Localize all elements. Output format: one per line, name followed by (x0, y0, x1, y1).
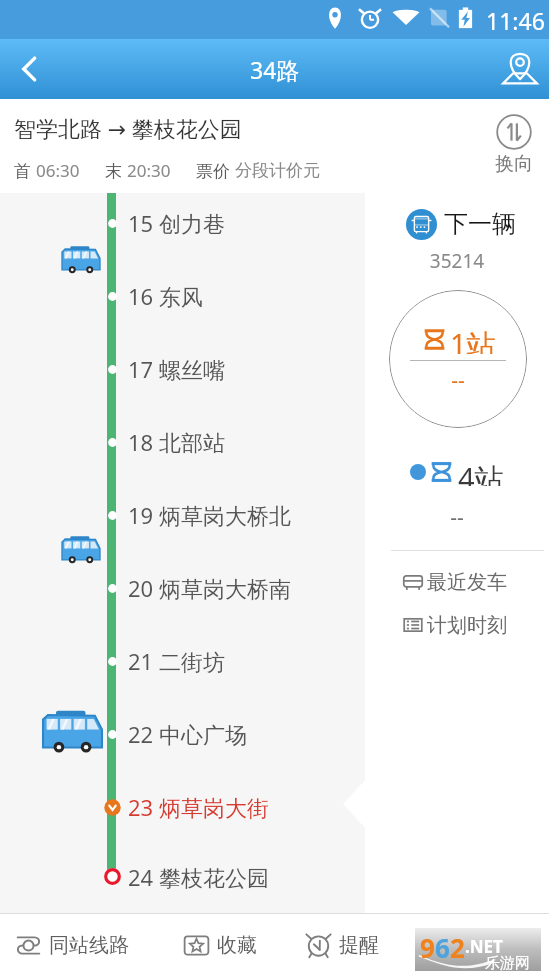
button[interactable]: 17 螺丝嘴 (0, 369, 365, 442)
staticText: 票价 (196, 159, 235, 182)
button[interactable]: 23 炳草岗大街 (0, 807, 365, 880)
staticText: 收藏 (217, 933, 257, 958)
button[interactable]: 20 炳草岗大桥南 (0, 588, 365, 661)
staticText: 19 炳草岗大桥北 (128, 500, 291, 530)
staticText: 首 (14, 159, 36, 182)
staticText: 分段计价元 (235, 160, 320, 181)
staticText: 06:30 (36, 159, 80, 182)
staticText: 智学北路 → 攀枝花公园 (14, 113, 242, 143)
button[interactable]: 16 东风 (0, 296, 365, 369)
staticText: 提醒 (339, 933, 379, 958)
button[interactable]: 下一辆 (373, 208, 549, 240)
button[interactable]: 19 炳草岗大桥北 (0, 515, 365, 588)
staticText: 11:46 (486, 5, 545, 36)
staticText: 2 (450, 930, 465, 965)
staticText: -- (389, 366, 527, 395)
staticText: 4站 (458, 458, 504, 486)
button[interactable]: 15 创力巷 (0, 223, 365, 296)
button[interactable]: 1站 (389, 290, 527, 428)
staticText: 最近发车 (427, 570, 507, 594)
button[interactable]: 24 攀枝花公园 (0, 880, 365, 913)
button[interactable]: 换向 (495, 114, 533, 176)
button[interactable]: 最近发车 (402, 570, 549, 594)
staticText: 17 螺丝嘴 (128, 354, 225, 384)
staticText: 23 炳草岗大街 (128, 792, 269, 822)
button[interactable]: 21 二街坊 (0, 661, 365, 734)
staticText: 9 (420, 930, 435, 965)
staticText: 34路 (250, 54, 300, 85)
button[interactable]: 计划时刻 (402, 613, 549, 637)
staticText: 乐游网 (485, 954, 530, 973)
button[interactable]: 同站线路 (0, 914, 168, 976)
staticText: 24 攀枝花公园 (128, 862, 269, 892)
button[interactable]: 4站 (365, 458, 549, 486)
button[interactable]: 18 北部站 (0, 442, 365, 515)
staticText: 计划时刻 (427, 613, 507, 637)
button[interactable]: Map (491, 39, 549, 99)
staticText: 35214 (365, 248, 549, 274)
staticText: 末 (105, 159, 127, 182)
staticText: 21 二街坊 (128, 646, 225, 676)
staticText: -- (365, 503, 549, 532)
staticText: .NET (465, 935, 503, 958)
staticText: 18 北部站 (128, 427, 225, 457)
staticText: 22 中心广场 (128, 719, 247, 749)
button[interactable]: 提醒 (305, 914, 415, 976)
staticText: 15 创力巷 (128, 208, 225, 238)
staticText: 下一辆 (444, 209, 516, 239)
staticText: 1站 (450, 324, 496, 354)
staticText: 20 炳草岗大桥南 (128, 573, 291, 603)
staticText: 6 (435, 930, 450, 965)
staticText: 20:30 (127, 159, 171, 182)
staticText: 换向 (495, 152, 533, 176)
button[interactable]: Back (0, 39, 60, 99)
staticText: 16 东风 (128, 281, 203, 311)
staticText: 同站线路 (49, 933, 129, 958)
button[interactable]: 22 中心广场 (0, 734, 365, 807)
button[interactable]: 收藏 (168, 914, 305, 976)
